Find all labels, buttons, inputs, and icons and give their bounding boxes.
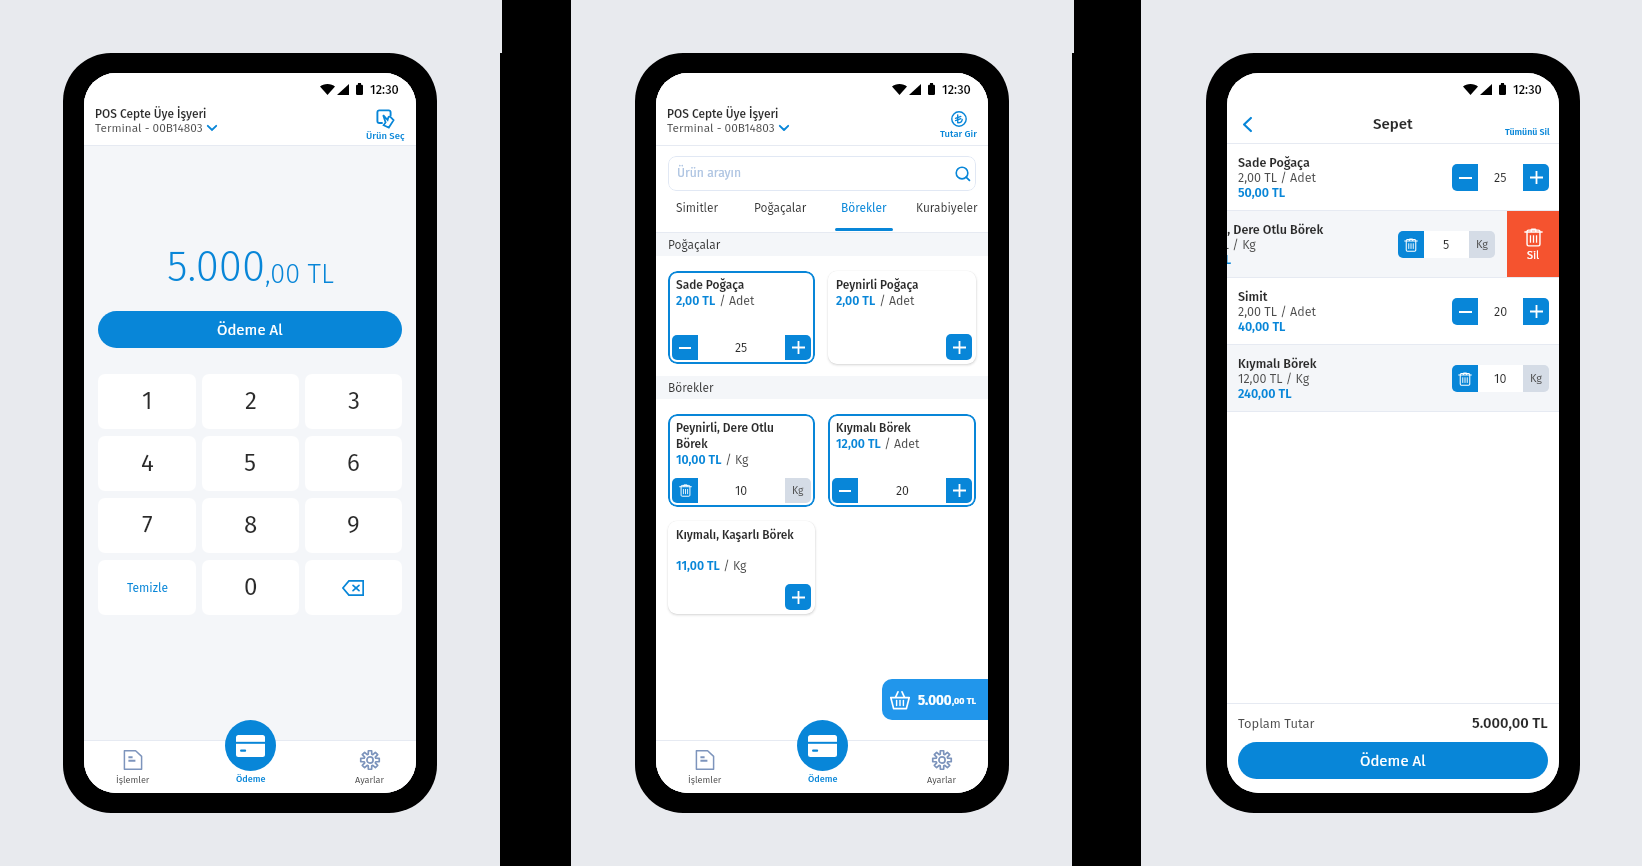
staticText: 5.000,00 TL (1472, 714, 1548, 732)
button[interactable]: 1 (98, 374, 196, 429)
button[interactable]: Ödeme Al (98, 311, 402, 348)
staticText: 6 (347, 449, 360, 478)
staticText: Simitler (676, 201, 719, 215)
button[interactable]: Sil (1452, 365, 1478, 392)
staticText: 2 (245, 387, 257, 416)
button[interactable]: 8 (202, 498, 299, 553)
button[interactable]: Ayarlar (877, 741, 988, 785)
staticText: Ödeme Al (217, 321, 283, 339)
button[interactable]: Azalt (1452, 298, 1478, 325)
staticText: Kg (1476, 238, 1489, 251)
staticText: / Kg (722, 452, 749, 467)
button[interactable]: Tümünü Sil (1505, 127, 1559, 143)
button[interactable]: Artır (1523, 298, 1549, 325)
staticText: Poğaçalar (668, 238, 721, 252)
button[interactable]: 5 (202, 436, 299, 491)
staticText: POS Cepte Üye İşyeri (667, 107, 779, 121)
staticText: 12,00 TL / Kg (1238, 371, 1310, 386)
button[interactable]: Kıymalı Börek (828, 414, 976, 507)
button[interactable]: 3 (305, 374, 402, 429)
staticText: / Kg (720, 558, 747, 573)
staticText: 10,00 TL (676, 452, 722, 467)
button[interactable]: 4 (98, 436, 196, 491)
button[interactable]: Kıymalı, Kaşarlı Börek (668, 521, 815, 614)
staticText: Simit (1238, 289, 1268, 304)
button[interactable]: Sade Poğaça (668, 271, 815, 364)
staticText: İşlemler (688, 774, 722, 785)
staticText: 10 (735, 483, 748, 498)
staticText: / Adet (716, 293, 755, 308)
staticText: 1 (142, 387, 153, 416)
button[interactable]: Sil (1507, 211, 1559, 278)
staticText: 20 (1494, 304, 1508, 319)
staticText: 240,00 TL (1238, 386, 1292, 401)
staticText: 12:30 (370, 82, 399, 97)
staticText: POS Cepte Üye İşyeri (95, 107, 207, 121)
button[interactable]: Ödeme (225, 720, 276, 771)
button[interactable]: Kurabiyeler (905, 191, 988, 232)
staticText: 0 (244, 573, 258, 602)
staticText: 50,00 TL (1227, 252, 1232, 267)
staticText: 5 (1443, 237, 1450, 252)
staticText: Kıymalı Börek (1238, 356, 1317, 371)
staticText: 25 (1494, 170, 1507, 185)
button[interactable]: Geri sil (305, 560, 402, 615)
button[interactable]: Ürün arayın (668, 156, 976, 191)
staticText: ,00 TL (952, 696, 977, 707)
button[interactable]: Artır (1523, 164, 1549, 191)
button[interactable]: Ekle (785, 584, 811, 610)
button[interactable]: Ayarlar (305, 741, 416, 785)
button[interactable]: 2 (202, 374, 299, 429)
button[interactable]: 0 (202, 560, 299, 615)
staticText: 40,00 TL (1238, 319, 1286, 334)
staticText: 12,00 TL (836, 436, 881, 451)
staticText: Kıymalı Börek (836, 421, 911, 435)
staticText: Börekler (841, 201, 887, 215)
button[interactable]: Azalt (1452, 164, 1478, 191)
button[interactable]: Sil (672, 478, 698, 503)
button[interactable]: 5.000 (882, 679, 988, 720)
button[interactable]: 7 (98, 498, 196, 553)
staticText: Sil (1527, 249, 1540, 262)
button[interactable]: Börekler (822, 191, 905, 232)
button[interactable]: Artır (785, 335, 811, 360)
button[interactable]: İşlemler (84, 741, 194, 785)
staticText: 5.000 (918, 692, 952, 708)
staticText: 10,00 TL / Kg (1227, 237, 1256, 252)
staticText: İşlemler (116, 774, 150, 785)
button[interactable]: Simitler (656, 191, 739, 232)
button[interactable]: Ekle (946, 334, 972, 360)
button[interactable]: Azalt (672, 335, 698, 360)
staticText: 12:30 (1513, 82, 1542, 97)
staticText: Ürün arayın (677, 166, 956, 181)
staticText: Peynirli, Dere Otlu Börek (676, 421, 804, 451)
staticText: 5.000 (167, 242, 265, 292)
button[interactable]: Ödeme Al (1238, 742, 1548, 779)
button[interactable]: Temizle (98, 560, 196, 615)
staticText: Ödeme (236, 773, 266, 784)
button[interactable]: 9 (305, 498, 402, 553)
staticText: Ayarlar (355, 774, 385, 785)
staticText: Peynirli Poğaça (836, 278, 919, 292)
staticText: 2,00 TL / Adet (1238, 170, 1317, 185)
button[interactable]: Ürün Seç (363, 108, 408, 142)
button[interactable]: Tutar Gir (937, 110, 980, 140)
button[interactable]: Geri (1233, 110, 1261, 138)
staticText: 2,00 TL / Adet (1238, 304, 1317, 319)
staticText: Ödeme (808, 773, 838, 784)
staticText: Börekler (668, 381, 714, 395)
button[interactable]: Peynirli, Dere Otlu Börek (668, 414, 815, 507)
button[interactable]: Ödeme (797, 720, 848, 771)
staticText: 11,00 TL (676, 558, 720, 573)
staticText: 2,00 TL (676, 293, 716, 308)
staticText: Terminal - 00B14803 (667, 121, 775, 135)
button[interactable]: Artır (946, 478, 972, 503)
button[interactable]: Azalt (832, 478, 858, 503)
staticText: 20 (896, 483, 909, 498)
button[interactable]: Peynirli Poğaça (828, 271, 976, 364)
button[interactable]: Sil (1398, 231, 1424, 258)
button[interactable]: İşlemler (656, 741, 766, 785)
button[interactable]: Poğaçalar (739, 191, 822, 232)
staticText: 5 (244, 449, 257, 478)
button[interactable]: 6 (305, 436, 402, 491)
